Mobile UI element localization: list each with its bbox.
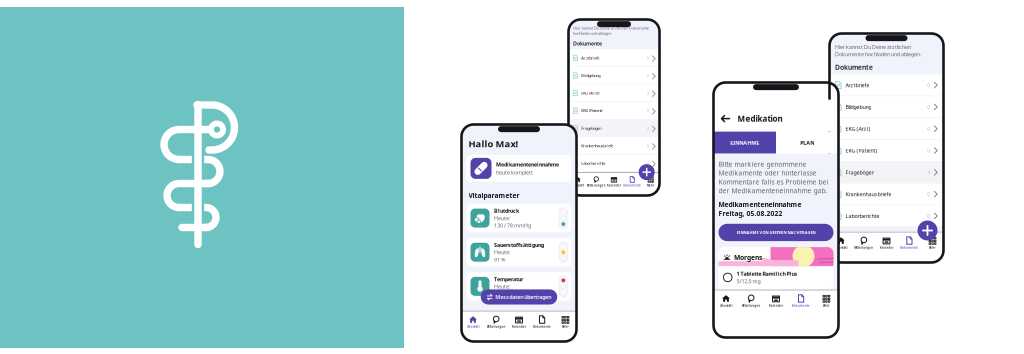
button[interactable]: EKG (Arzt) [829,118,943,140]
staticText: Bitte markiere genommene Medikamente ode… [718,160,828,195]
button[interactable]: Mitteilungen [587,176,605,187]
button[interactable]: Kalender [875,236,898,249]
staticText: Mitteilungen [854,246,873,249]
staticText: Mitteilungen [741,304,760,307]
staticText: Kalender [769,304,783,307]
button[interactable]: EKG (Arzt) [568,84,659,102]
staticText: Kalender [879,246,893,249]
staticText: Hier kannst Du Deine ärztlichen Dokument… [835,43,921,58]
staticText: Dokumente [792,304,810,307]
staticText: 0 [927,147,930,154]
button[interactable]: Sauerstoffsättigung [466,238,571,266]
staticText: 0 [647,143,649,148]
button[interactable]: Messdaten übertragen [481,289,557,304]
staticText: Heute: [494,283,510,290]
staticText: 0 [647,55,649,60]
button[interactable]: Mehr [813,294,838,307]
staticText: Dokumente [573,40,602,47]
staticText: heute komplett [496,169,533,176]
button[interactable]: Arztbriefe [568,49,659,67]
button[interactable]: Dokumente [788,294,813,307]
staticText: 0 [647,161,649,166]
staticText: Krankenhausbriefe [581,143,613,148]
button[interactable]: Kalender [507,315,530,328]
button[interactable]: Übersicht [713,294,738,307]
button[interactable]: EINNAHME [713,132,776,154]
staticText: 0 [927,212,930,219]
staticText: Fragebögen [845,169,874,176]
staticText: Blutdruck [494,207,519,214]
staticText: 5/12,5 mg [736,278,760,285]
button[interactable]: Übersicht [829,236,852,249]
button[interactable]: EKG (Patient) [829,140,943,162]
button[interactable]: Mehr [921,236,943,249]
button[interactable]: Laborberichte [568,155,659,172]
staticText: Morgens [734,253,762,262]
button[interactable]: Laborberichte [829,205,943,227]
staticText: 4 [647,125,649,131]
button[interactable]: Medikamenteneinnahme [466,155,571,182]
staticText: Mitteilungen [587,184,606,187]
staticText: EKG (Patient) [581,108,602,113]
staticText: PLAN [800,139,814,146]
button[interactable]: Bildgebung [829,96,943,118]
staticText: Übersicht [834,246,847,249]
button[interactable]: EINNAHME VON GESTERN NACHTRAGEN [718,224,833,241]
button[interactable]: Kalender [763,294,788,307]
staticText: Hallo Max! [468,137,518,150]
staticText: Heute: [494,249,510,256]
staticText: 0 [647,73,649,78]
staticText: Hier kannst Du Deine ärztlichen Dokument… [573,25,649,36]
staticText: EKG (Patient) [845,147,877,154]
button[interactable]: Temperatur [466,272,571,301]
staticText: Übersicht [466,325,479,328]
button[interactable]: Dokumente [623,176,641,187]
button[interactable]: Bildgebung [568,67,659,84]
staticText: 1 Tablette Ramilich Plus [736,270,797,277]
staticText: 0 [927,191,930,198]
staticText: Sauerstoffsättigung [494,241,544,248]
staticText: Bildgebung [845,103,871,110]
button[interactable]: Fragebögen [829,162,943,183]
button[interactable]: Mitteilungen [484,315,507,328]
staticText: Heute: [494,214,510,222]
staticText: Mehr [929,246,936,249]
staticText: Kalender [607,184,621,187]
staticText: EINNAHME [730,139,759,146]
staticText: Krankenhausbriefe [845,191,891,198]
button[interactable]: Arztbriefe [829,74,943,96]
button[interactable]: Dokumente [530,315,553,328]
button[interactable]: EKG (Patient) [568,102,659,120]
staticText: Dokumente [623,184,641,187]
staticText: 0 [927,125,930,132]
staticText: Medikamenteneinnahme [496,161,559,168]
button[interactable]: Übersicht [461,315,484,328]
button[interactable]: Zurück [713,110,737,128]
staticText: Übersicht [571,184,584,187]
staticText: Dokumente [900,246,918,249]
staticText: Medikamenteneinnahme Freitag, 05.08.2022 [718,200,801,218]
staticText: Arztbriefe [845,82,869,89]
staticText: 4 [927,169,930,176]
button[interactable]: Dokumente [898,236,921,249]
button[interactable]: Krankenhausbriefe [829,183,943,205]
button[interactable]: Übersicht [568,176,587,187]
button[interactable]: Krankenhausbriefe [568,137,659,155]
button[interactable]: Kalender [605,176,623,187]
button[interactable]: Mehr [641,176,659,187]
staticText: 0 [927,82,930,89]
button[interactable]: Mehr [553,315,576,328]
staticText: 91 % [494,256,505,263]
staticText: Messdaten übertragen [495,293,551,300]
button[interactable]: PLAN [776,132,838,154]
button[interactable]: Blutdruck [466,204,571,232]
staticText: Laborberichte [581,161,605,166]
staticText: Bildgebung [581,73,600,78]
staticText: Übersicht [719,304,732,307]
staticText: Vitalparameter [468,191,519,200]
button[interactable]: Fragebögen [568,120,659,137]
button[interactable]: Mitteilungen [852,236,875,249]
button[interactable]: Mitteilungen [738,294,763,307]
button[interactable]: Dokument hinzufügen [639,164,655,180]
button[interactable]: Dokument hinzufügen [917,220,937,240]
